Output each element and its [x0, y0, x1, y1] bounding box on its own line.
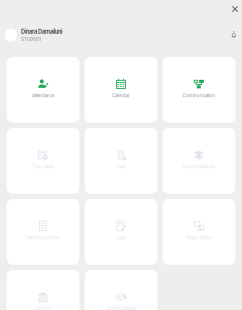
- button[interactable]: Daily Assignment: [7, 199, 79, 265]
- button[interactable]: Course Materials: [163, 128, 235, 194]
- button[interactable]: Close: [226, 0, 242, 18]
- staticText: Exam: [115, 235, 126, 240]
- staticText: Communication: [182, 93, 215, 98]
- staticText: Library: [36, 306, 50, 310]
- button[interactable]: Communication: [163, 57, 235, 123]
- staticText: Image Gallery: [186, 235, 212, 240]
- staticText: Course Materials: [182, 164, 215, 169]
- button[interactable]: Library: [7, 270, 79, 310]
- button[interactable]: Time Table: [7, 128, 79, 194]
- staticText: Attendance: [32, 93, 54, 98]
- button[interactable]: Attendance: [7, 57, 79, 123]
- button[interactable]: Image Gallery: [163, 199, 235, 265]
- staticText: Dinara Damailuni: [21, 28, 62, 35]
- staticText: Daily Assignment: [26, 235, 60, 240]
- staticText: Calendar: [112, 93, 130, 98]
- staticText: Fees: [117, 164, 125, 169]
- button[interactable]: Online Classes: [85, 270, 157, 310]
- staticText: Online Classes: [107, 306, 135, 310]
- button[interactable]: Calendar: [85, 57, 157, 123]
- staticText: STU0001: [21, 36, 41, 42]
- button[interactable]: Notifications: [225, 26, 242, 43]
- staticText: Time Table: [32, 164, 53, 169]
